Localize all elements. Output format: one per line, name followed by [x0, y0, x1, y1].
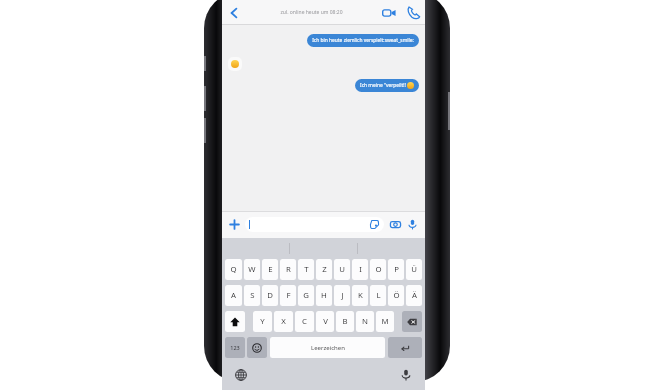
staticText: T	[304, 264, 309, 275]
button[interactable]: L	[370, 285, 386, 306]
button[interactable]: H	[316, 285, 332, 306]
button[interactable]: Add attachment	[226, 216, 243, 233]
staticText: Ich meine "verpeilt!!	[360, 82, 406, 89]
staticText: H	[321, 290, 327, 301]
staticText: Leerzeichen	[311, 344, 345, 352]
button[interactable]: Ö	[388, 285, 404, 306]
button[interactable]: E	[262, 259, 278, 280]
button[interactable]: T	[298, 259, 314, 280]
button[interactable]: Emoji	[247, 337, 267, 358]
button[interactable]: Q	[225, 259, 242, 280]
button[interactable]: Call	[401, 0, 425, 25]
button[interactable]: M	[376, 311, 394, 332]
staticText: U	[339, 264, 345, 275]
button[interactable]: G	[298, 285, 314, 306]
staticText: Ö	[393, 290, 400, 301]
button[interactable]: Leerzeichen	[270, 337, 385, 358]
button[interactable]: 123	[225, 337, 245, 358]
staticText: I	[359, 264, 362, 275]
button[interactable]: X	[274, 311, 293, 332]
button[interactable]: U	[334, 259, 350, 280]
staticText: F	[286, 290, 291, 301]
staticText: Ich bin heute ziemlich verspielt:sweat_s…	[312, 37, 414, 44]
button[interactable]: Z	[316, 259, 332, 280]
button[interactable]: Change keyboard language	[231, 365, 251, 385]
button[interactable]	[228, 57, 242, 71]
staticText: D	[267, 290, 273, 301]
staticText: M	[381, 316, 389, 327]
staticText: B	[342, 316, 348, 327]
button[interactable]: Dictate	[396, 365, 416, 385]
button[interactable]: Ich bin heute ziemlich verspielt:sweat_s…	[307, 34, 419, 47]
staticText: J	[341, 290, 344, 301]
button[interactable]: K	[352, 285, 368, 306]
staticText: 123	[230, 344, 240, 351]
button[interactable]: Shift	[225, 311, 245, 332]
button[interactable]: Video call	[377, 0, 401, 25]
button[interactable]: A	[225, 285, 242, 306]
staticText: G	[303, 290, 309, 301]
button[interactable]: Camera	[387, 216, 404, 233]
staticText: W	[248, 264, 256, 275]
button[interactable]: Return	[388, 337, 422, 358]
button[interactable]: O	[370, 259, 386, 280]
button[interactable]: V	[316, 311, 334, 332]
button[interactable]: P	[388, 259, 404, 280]
button[interactable]: N	[356, 311, 374, 332]
button[interactable]: C	[295, 311, 314, 332]
staticText: X	[281, 316, 286, 327]
button[interactable]: Y	[253, 311, 272, 332]
staticText: L	[376, 290, 381, 301]
button[interactable]: B	[336, 311, 354, 332]
button[interactable]: Backspace	[402, 311, 422, 332]
staticText: A	[231, 290, 236, 301]
staticText: C	[302, 316, 307, 327]
staticText: Ü	[411, 264, 417, 275]
button[interactable]: R	[280, 259, 296, 280]
button[interactable]: Stickers	[245, 217, 384, 232]
button[interactable]: D	[262, 285, 278, 306]
staticText: Y	[260, 316, 265, 327]
staticText: N	[362, 316, 368, 327]
button[interactable]: Ü	[406, 259, 422, 280]
staticText: V	[323, 316, 328, 327]
staticText: P	[394, 264, 399, 275]
staticText: R	[286, 264, 291, 275]
button[interactable]: W	[244, 259, 260, 280]
staticText: Q	[230, 264, 237, 275]
button[interactable]: I	[352, 259, 368, 280]
staticText: S	[250, 290, 255, 301]
button[interactable]: Stickers	[369, 219, 380, 230]
button[interactable]: Voice message	[404, 216, 421, 233]
staticText: Z	[322, 264, 327, 275]
button[interactable]: S	[244, 285, 260, 306]
button[interactable]: Back	[222, 0, 246, 25]
staticText: K	[358, 290, 363, 301]
button[interactable]: J	[334, 285, 350, 306]
staticText: O	[375, 264, 382, 275]
button[interactable]: Ich meine "verpeilt!!	[355, 79, 419, 92]
button[interactable]: F	[280, 285, 296, 306]
staticText: Ä	[412, 290, 417, 301]
button[interactable]: Ä	[406, 285, 422, 306]
staticText: zul. online heute um 08:20	[280, 9, 343, 16]
staticText: E	[268, 264, 273, 275]
